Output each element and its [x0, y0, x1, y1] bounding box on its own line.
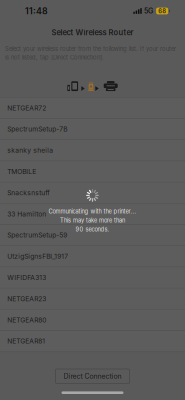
button[interactable]: NETGEAR81 [0, 331, 185, 352]
staticText: 5G [144, 7, 153, 15]
staticText: Direct Connection [63, 372, 121, 380]
staticText: NETGEAR80 [7, 316, 46, 324]
staticText: TMOBILE [7, 168, 36, 176]
staticText: NETGEAR23 [7, 295, 46, 303]
button[interactable]: NETGEAR72 [0, 98, 185, 119]
staticText: UtzigSignsFBI_1917 [7, 252, 68, 260]
staticText: 68 [158, 7, 166, 15]
staticText: Select Wireless Router [51, 28, 133, 37]
button[interactable]: NETGEAR23 [0, 288, 185, 310]
staticText: 90 seconds. [75, 226, 109, 233]
button[interactable]: SpectrumSetup-7B [0, 119, 185, 140]
staticText: NETGEAR81 [7, 337, 45, 345]
staticText: WIFIDFA313 [7, 274, 46, 282]
button[interactable]: Snacksnstuff [0, 182, 185, 204]
button[interactable]: 33 Hamilton [0, 204, 185, 225]
staticText: skanky sheila [7, 146, 53, 154]
button[interactable]: TMOBILE [0, 161, 185, 182]
staticText: Communicating with the printer... [48, 208, 136, 215]
button[interactable]: NETGEAR80 [0, 310, 185, 331]
button[interactable]: WIFIDFA313 [0, 267, 185, 288]
button[interactable]: SpectrumSetup-59 [0, 225, 185, 246]
staticText: 33 Hamilton [7, 210, 46, 218]
staticText: Snacksnstuff [7, 189, 49, 197]
button[interactable]: skanky sheila [0, 140, 185, 161]
staticText: NETGEAR72 [7, 104, 46, 112]
staticText: SpectrumSetup-59 [7, 231, 67, 239]
staticText: This may take more than [60, 217, 125, 224]
staticText: SpectrumSetup-7B [7, 125, 67, 133]
button[interactable]: Direct Connection [55, 369, 129, 383]
button[interactable]: UtzigSignsFBI_1917 [0, 246, 185, 267]
staticText: Select your wireless router from the fol… [5, 45, 176, 61]
staticText: 11:48 [25, 6, 48, 16]
